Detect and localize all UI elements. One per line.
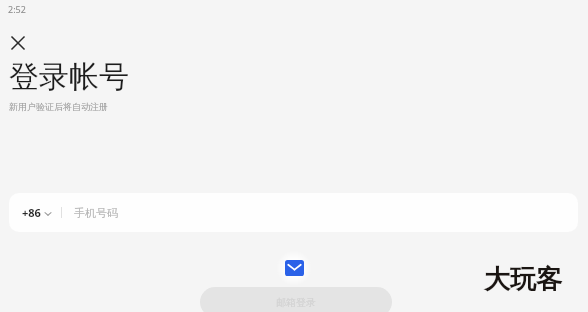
staticText: 登录帐号 [9, 58, 129, 96]
staticText: +86 [22, 205, 41, 220]
staticText: 邮箱登录 [276, 296, 316, 309]
staticText: 2:52 [8, 3, 26, 15]
button[interactable]: Close [6, 31, 30, 55]
staticText: 大玩客 [484, 263, 562, 296]
button[interactable]: Email sign in [276, 250, 312, 286]
staticText: 手机号码 [74, 206, 118, 220]
button[interactable]: 邮箱登录 [200, 287, 392, 312]
staticText: 新用户验证后将自动注册 [9, 101, 108, 112]
button[interactable]: +86 [9, 193, 578, 232]
